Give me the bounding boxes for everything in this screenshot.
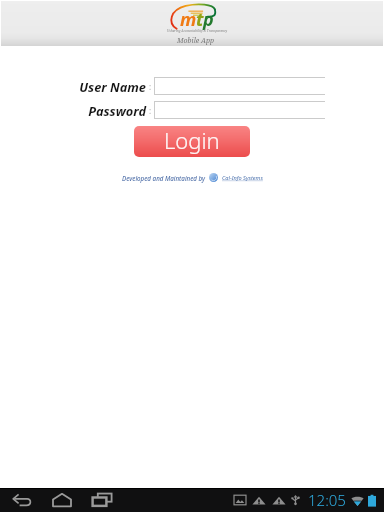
button[interactable]: Home: [42, 488, 82, 512]
button[interactable]: Back: [2, 488, 42, 512]
staticText: Login: [164, 126, 220, 155]
staticText: Password: [88, 102, 146, 119]
staticText: :: [149, 105, 152, 116]
staticText: :: [149, 81, 152, 92]
staticText: Developed and Maintained by: [122, 174, 206, 182]
staticText: t: [196, 7, 203, 32]
staticText: 12:05: [308, 490, 346, 510]
staticText: Mobile App: [177, 36, 215, 46]
button[interactable]: [154, 101, 325, 119]
button[interactable]: [154, 77, 325, 95]
staticText: m: [180, 7, 196, 32]
button[interactable]: Recent apps: [82, 488, 122, 512]
staticText: Ushering Accountability & Transparency: [167, 29, 228, 33]
button[interactable]: Login: [134, 126, 250, 157]
button[interactable]: Cal-Info Systems: [222, 174, 263, 182]
staticText: User Name: [79, 78, 146, 95]
staticText: p: [203, 7, 213, 32]
